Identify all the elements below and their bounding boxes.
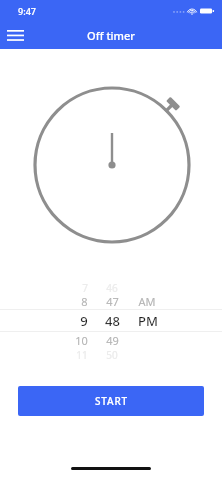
staticText: Off timer [87, 28, 135, 43]
button[interactable]: 10 [0, 332, 222, 348]
staticText: START [95, 394, 128, 408]
button[interactable]: 9 [0, 309, 222, 332]
staticText: 7 [82, 281, 88, 293]
button[interactable]: Open navigation menu [0, 22, 30, 49]
staticText: 50 [106, 348, 118, 360]
staticText: 10 [75, 333, 88, 348]
staticText: 48 [105, 312, 120, 330]
staticText: 8 [81, 294, 88, 309]
staticText: 47 [106, 294, 119, 309]
staticText: 9 [80, 312, 88, 330]
staticText: 49 [106, 333, 119, 348]
button[interactable]: START [18, 386, 204, 416]
staticText: 46 [106, 281, 118, 293]
staticText: AM [138, 294, 156, 309]
button[interactable]: 8 [0, 293, 222, 309]
staticText: PM [138, 312, 158, 330]
staticText: 11 [76, 348, 88, 360]
staticText: 9:47 [18, 5, 36, 17]
